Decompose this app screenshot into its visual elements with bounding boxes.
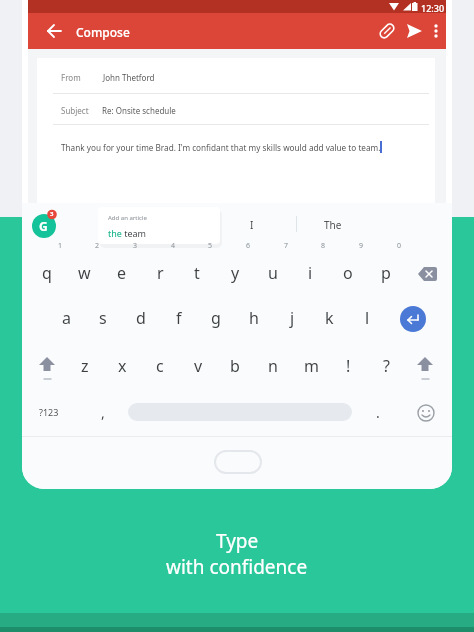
button[interactable]: l [348,302,386,334]
staticText: , [101,403,105,422]
button[interactable]: ? [367,350,405,382]
button[interactable]: o [329,257,367,289]
staticText: n [268,355,278,377]
staticText: s [99,307,107,329]
button[interactable]: w [65,257,103,289]
button[interactable]: . [359,396,397,428]
staticText: x [118,355,127,377]
staticText: i [308,262,313,284]
staticText: 2 [95,241,100,251]
button[interactable]: j [273,302,311,334]
button[interactable]: a [47,302,85,334]
staticText: I [250,218,254,232]
staticText: u [268,262,278,284]
button[interactable]: ! [329,350,367,382]
button[interactable]: n [254,350,292,382]
staticText: w [78,262,91,284]
staticText: b [230,355,240,377]
button[interactable] [409,351,441,383]
staticText: 12:30 [421,2,445,14]
staticText: 5 [208,241,213,251]
staticText: p [381,262,391,284]
staticText: 8 [321,241,326,251]
button[interactable]: s [84,302,122,334]
button[interactable]: G [30,209,66,245]
button[interactable]: g [197,302,235,334]
staticText: t [194,262,200,284]
button[interactable]: b [216,350,254,382]
staticText: q [42,262,52,284]
staticText: 1 [58,241,63,251]
button[interactable]: , [84,396,122,428]
staticText: Subject [61,105,89,116]
staticText: 4 [171,241,176,251]
button[interactable] [408,259,444,289]
button[interactable]: q [28,257,66,289]
button[interactable]: i [291,257,329,289]
staticText: h [249,307,259,329]
button[interactable] [40,16,70,46]
button[interactable] [400,17,428,45]
staticText: the team [108,227,147,239]
staticText: ! [346,355,351,377]
staticText: z [81,355,89,377]
button[interactable]: h [235,302,273,334]
staticText: f [176,307,182,329]
button[interactable]: k [310,302,348,334]
staticText: j [290,307,295,329]
staticText: y [231,262,240,284]
button[interactable]: The [297,207,369,243]
staticText: g [211,307,221,329]
staticText: 6 [246,241,251,251]
staticText: From [61,72,81,83]
button[interactable] [426,17,446,45]
staticText: The [324,218,342,232]
staticText: 3 [133,241,138,251]
staticText: with confidence [166,554,308,580]
staticText: m [304,355,319,377]
button[interactable] [400,306,426,332]
button[interactable]: m [292,350,330,382]
staticText: Type [216,528,259,554]
staticText: John Thetford [103,72,155,83]
staticText: 9 [359,241,364,251]
button[interactable]: y [216,257,254,289]
button[interactable]: d [122,302,160,334]
staticText: Add an article [108,214,147,222]
button[interactable]: r [141,257,179,289]
button[interactable] [373,17,401,45]
staticText: d [136,307,146,329]
staticText: ? [383,355,390,377]
staticText: Re: Onsite schedule [102,105,176,116]
button[interactable]: x [103,350,141,382]
button[interactable]: v [179,350,217,382]
staticText: Compose [76,24,130,40]
staticText: G [39,218,48,234]
button[interactable] [412,399,440,427]
staticText: l [365,307,370,329]
staticText: a [62,307,71,329]
staticText: 7 [284,241,289,251]
button[interactable] [31,351,63,383]
button[interactable]: z [66,350,104,382]
staticText: 0 [397,241,402,251]
staticText: v [194,355,203,377]
button[interactable]: t [178,257,216,289]
staticText: ?123 [39,406,59,418]
button[interactable] [214,450,262,474]
staticText: c [156,355,164,377]
button[interactable]: e [103,257,141,289]
staticText: k [325,307,334,329]
button[interactable]: c [141,350,179,382]
button[interactable]: u [254,257,292,289]
staticText: Thank you for your time Brad. I'm confid… [61,142,381,153]
button[interactable]: I [219,207,285,243]
button[interactable]: Add an article [98,207,220,244]
staticText: . [376,403,380,422]
button[interactable]: ?123 [30,396,68,428]
button[interactable]: p [367,257,405,289]
button[interactable]: f [160,302,198,334]
staticText: r [157,262,164,284]
staticText: 3 [50,210,54,218]
